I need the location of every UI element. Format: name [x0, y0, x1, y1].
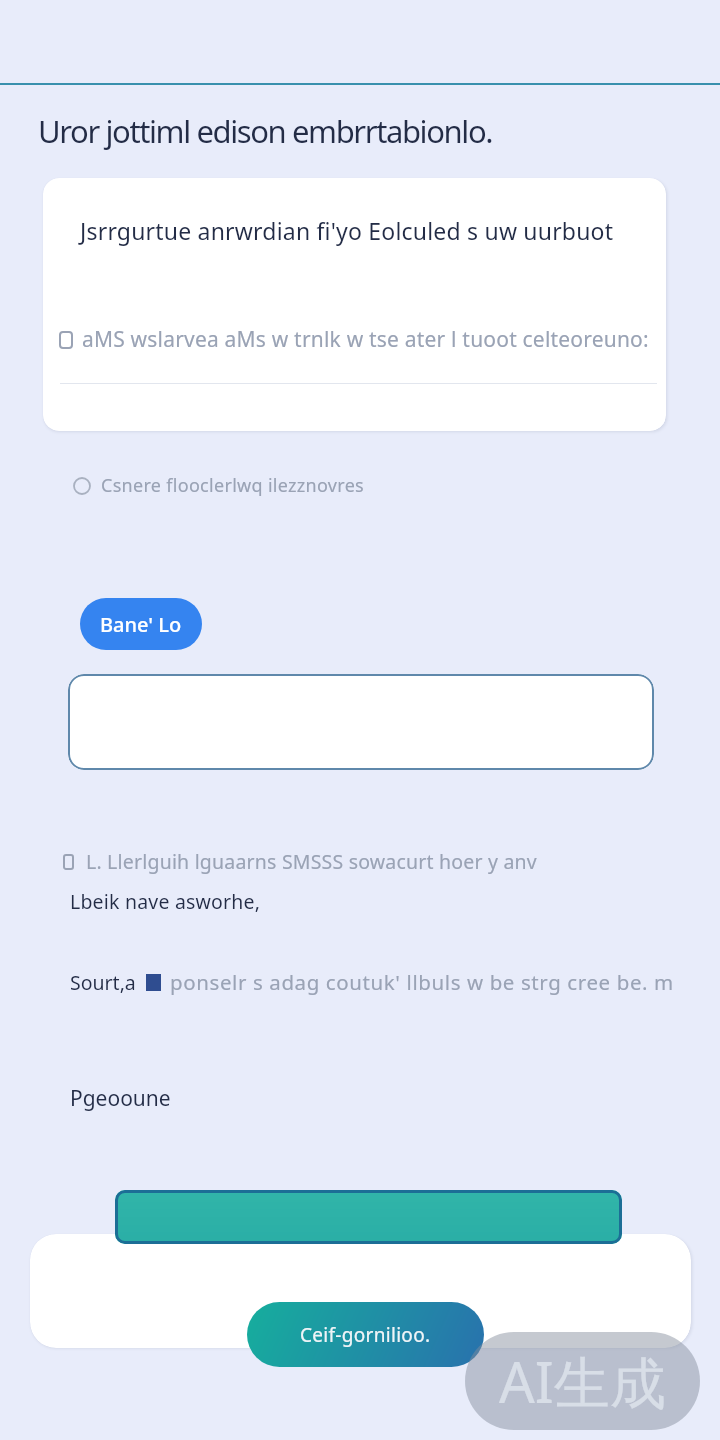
button[interactable]: Csnere flooclerlwq ilezznovres [72, 473, 365, 498]
staticText: AI生成 [499, 1343, 666, 1419]
staticText: L. Llerlguih lguaarns SMSSS sowacurt hoe… [86, 848, 537, 875]
staticText: Lbeik nave asworhe, [70, 888, 261, 915]
other: AI generated watermark [465, 1332, 700, 1430]
button[interactable]: Ceif-gornilioo. [247, 1302, 484, 1367]
button[interactable]: Text input field [68, 674, 654, 770]
staticText: ponselr s adag coutuk' llbuls w be strg … [170, 968, 674, 996]
button[interactable]: Progress bar [115, 1190, 622, 1244]
button[interactable]: Bane' Lo [80, 598, 202, 650]
staticText: Jsrrgurtue anrwrdian fi'yo Eolculed s uw… [80, 215, 614, 246]
button[interactable]: L. Llerlguih lguaarns SMSSS sowacurt hoe… [62, 848, 537, 875]
button[interactable]: aMS wslarvea aMs w trnlk w tse ater l tu… [58, 325, 649, 354]
staticText: aMS wslarvea aMs w trnlk w tse ater l tu… [82, 325, 649, 354]
staticText: Uror jottiml edison embrrtabionlo. [38, 110, 493, 152]
staticText: Pgeooune [70, 1084, 171, 1113]
staticText: Bane' Lo [100, 611, 182, 638]
staticText: Sourt,a [70, 969, 136, 996]
staticText: Ceif-gornilioo. [300, 1322, 431, 1348]
staticText: Csnere flooclerlwq ilezznovres [101, 473, 365, 498]
button[interactable]: Jsrrgurtue anrwrdian fi'yo Eolculed s uw… [43, 178, 666, 431]
